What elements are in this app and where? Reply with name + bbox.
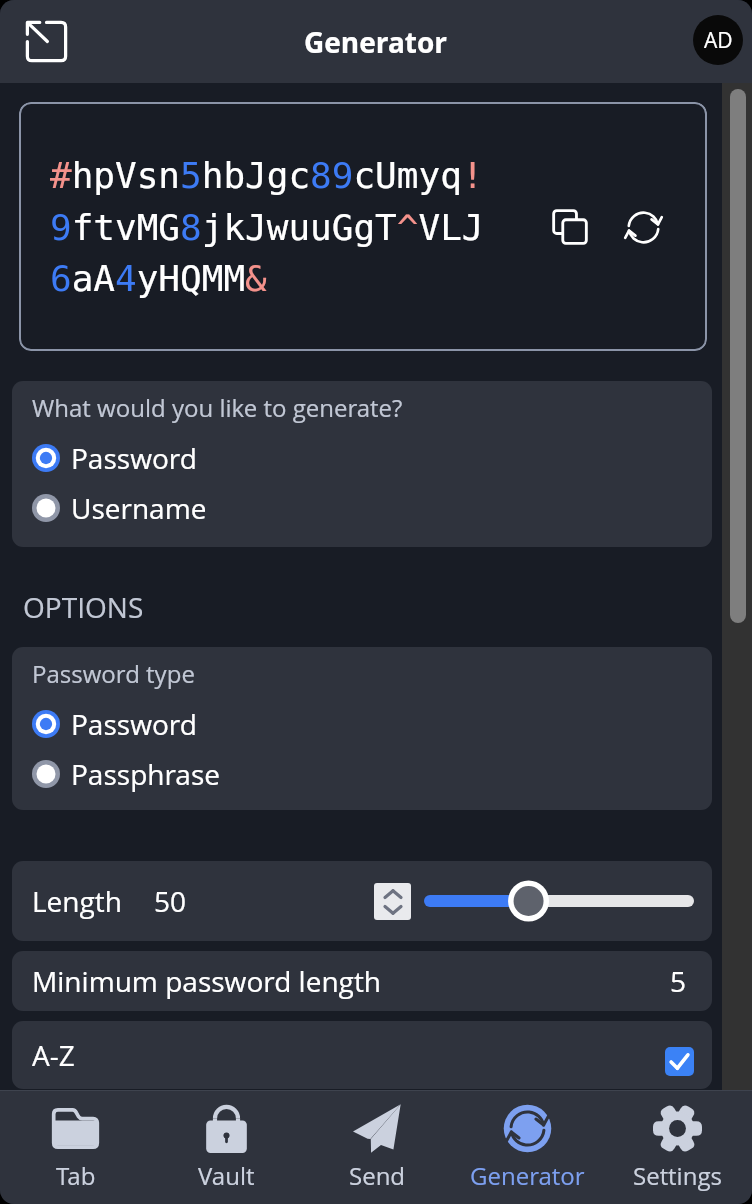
staticText: Tab [56, 1159, 96, 1192]
button[interactable]: Include uppercase letters [665, 1047, 694, 1076]
staticText: #hpVsn5hbJgc89cUmyq!9ftvMG8jkJwuuGgT^VLJ… [50, 155, 495, 299]
button[interactable]: Open in new window [17, 13, 75, 71]
button[interactable]: Copy password [544, 201, 596, 253]
button[interactable]: Passphrase [12, 749, 712, 799]
button[interactable]: Settings [602, 1091, 752, 1204]
staticText: Vault [198, 1159, 255, 1192]
button[interactable]: Send [302, 1091, 452, 1204]
staticText: 5 [670, 962, 687, 1000]
staticText: Username [71, 489, 207, 527]
staticText: Password [71, 705, 197, 743]
button[interactable]: Password [12, 433, 712, 483]
button[interactable]: Length slider [419, 878, 712, 924]
staticText: Password type [32, 657, 195, 690]
button[interactable]: A-Z [12, 1021, 712, 1089]
button[interactable]: Minimum password length [12, 951, 712, 1011]
button[interactable]: Vault [151, 1091, 302, 1204]
button[interactable]: Generate password [617, 201, 669, 253]
button[interactable]: Password [12, 699, 712, 749]
button[interactable]: Adjust length [374, 883, 411, 920]
staticText: Send [349, 1159, 406, 1192]
staticText: Generator [304, 23, 448, 61]
button[interactable]: Length [12, 861, 712, 941]
staticText: Settings [633, 1159, 722, 1192]
staticText: Password [71, 439, 197, 477]
button[interactable]: Tab [0, 1091, 151, 1204]
button[interactable]: Account [693, 15, 743, 65]
button[interactable]: Generator [452, 1091, 602, 1204]
staticText: A-Z [32, 1036, 75, 1074]
staticText: Passphrase [71, 755, 220, 793]
staticText: AD [704, 26, 733, 55]
staticText: OPTIONS [23, 588, 144, 626]
staticText: Minimum password length [32, 962, 382, 1000]
button[interactable]: #hpVsn5hbJgc89cUmyq!9ftvMG8jkJwuuGgT^VLJ… [19, 102, 707, 351]
staticText: What would you like to generate? [32, 391, 403, 424]
button[interactable]: Username [12, 483, 712, 533]
staticText: Length [32, 882, 122, 920]
staticText: Generator [470, 1159, 585, 1192]
staticText: 50 [154, 882, 187, 920]
